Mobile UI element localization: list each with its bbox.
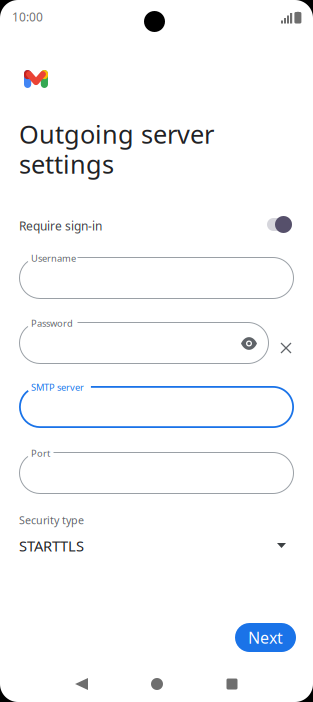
staticText: Next <box>248 627 283 648</box>
staticText: Password <box>31 317 73 329</box>
button[interactable]: Home <box>145 672 169 696</box>
button[interactable]: Back <box>75 672 101 696</box>
staticText: Port <box>31 447 50 459</box>
staticText: Outgoing server <box>19 117 214 151</box>
staticText: STARTTLS <box>19 536 84 555</box>
button[interactable]: STARTTLS <box>19 534 294 556</box>
staticText: 10:00 <box>12 9 43 25</box>
staticText: settings <box>19 147 114 181</box>
staticText: Username <box>31 252 76 264</box>
button[interactable]: Clear password <box>276 338 296 358</box>
button[interactable]: Recent apps <box>220 672 244 696</box>
button[interactable]: Require sign-in <box>267 216 292 233</box>
staticText: SMTP server <box>31 381 84 393</box>
button[interactable]: Next <box>235 623 296 652</box>
staticText: Require sign-in <box>19 218 102 234</box>
staticText: Security type <box>19 513 84 527</box>
